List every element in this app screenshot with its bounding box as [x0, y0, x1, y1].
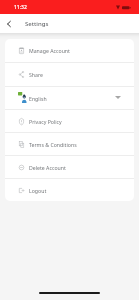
staticText: Privacy Policy [29, 118, 62, 125]
button[interactable]: English [5, 87, 134, 109]
staticText: Delete Account [29, 164, 66, 171]
button[interactable]: Privacy Policy [5, 110, 134, 132]
staticText: Settings [25, 20, 49, 28]
staticText: Logout [29, 187, 47, 194]
button[interactable]: Share [5, 63, 134, 86]
staticText: Share [29, 71, 43, 78]
button[interactable]: Manage Account [5, 39, 134, 62]
staticText: Manage Account [29, 47, 70, 54]
button[interactable]: Delete Account [5, 156, 134, 178]
button[interactable]: Back [2, 17, 15, 30]
button[interactable]: Terms & Conditions [5, 133, 134, 155]
button[interactable]: Logout [5, 179, 134, 201]
staticText: 11:32 [14, 4, 27, 11]
staticText: English [29, 95, 47, 102]
staticText: Terms & Conditions [29, 141, 77, 148]
